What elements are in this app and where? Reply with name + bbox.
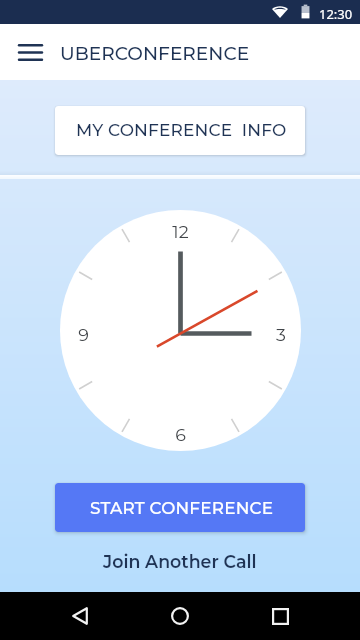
- staticText: MY CONFERENCE INFO: [76, 120, 287, 141]
- button[interactable]: START CONFERENCE: [55, 483, 305, 532]
- button[interactable]: Join Another Call: [0, 546, 360, 576]
- staticText: UBERCONFERENCE: [60, 42, 250, 65]
- button[interactable]: Recent apps: [256, 592, 304, 640]
- button[interactable]: Home: [156, 592, 204, 640]
- button[interactable]: Open navigation menu: [8, 24, 52, 80]
- button[interactable]: MY CONFERENCE INFO: [55, 106, 305, 155]
- staticText: 3: [276, 324, 286, 345]
- button[interactable]: Back: [56, 592, 104, 640]
- staticText: START CONFERENCE: [90, 498, 274, 518]
- staticText: 12:30: [319, 5, 353, 23]
- staticText: 9: [78, 324, 89, 345]
- staticText: 12: [172, 221, 189, 242]
- staticText: Join Another Call: [103, 551, 257, 572]
- staticText: 6: [175, 424, 186, 445]
